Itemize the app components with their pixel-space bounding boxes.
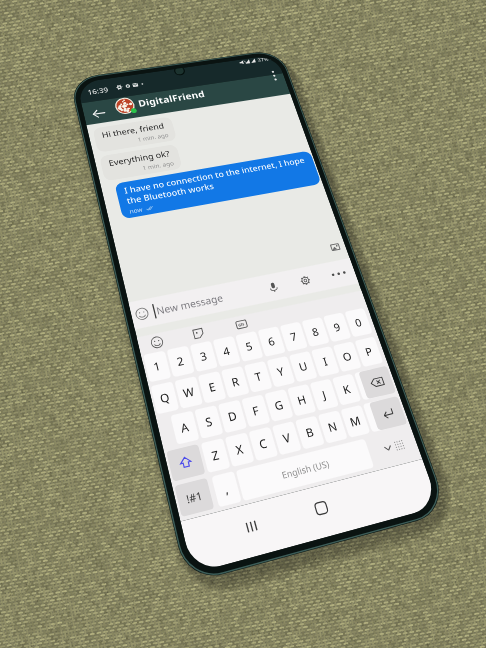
button[interactable]: Chat conversation with DigitalFriend bbox=[0, 0, 486, 648]
